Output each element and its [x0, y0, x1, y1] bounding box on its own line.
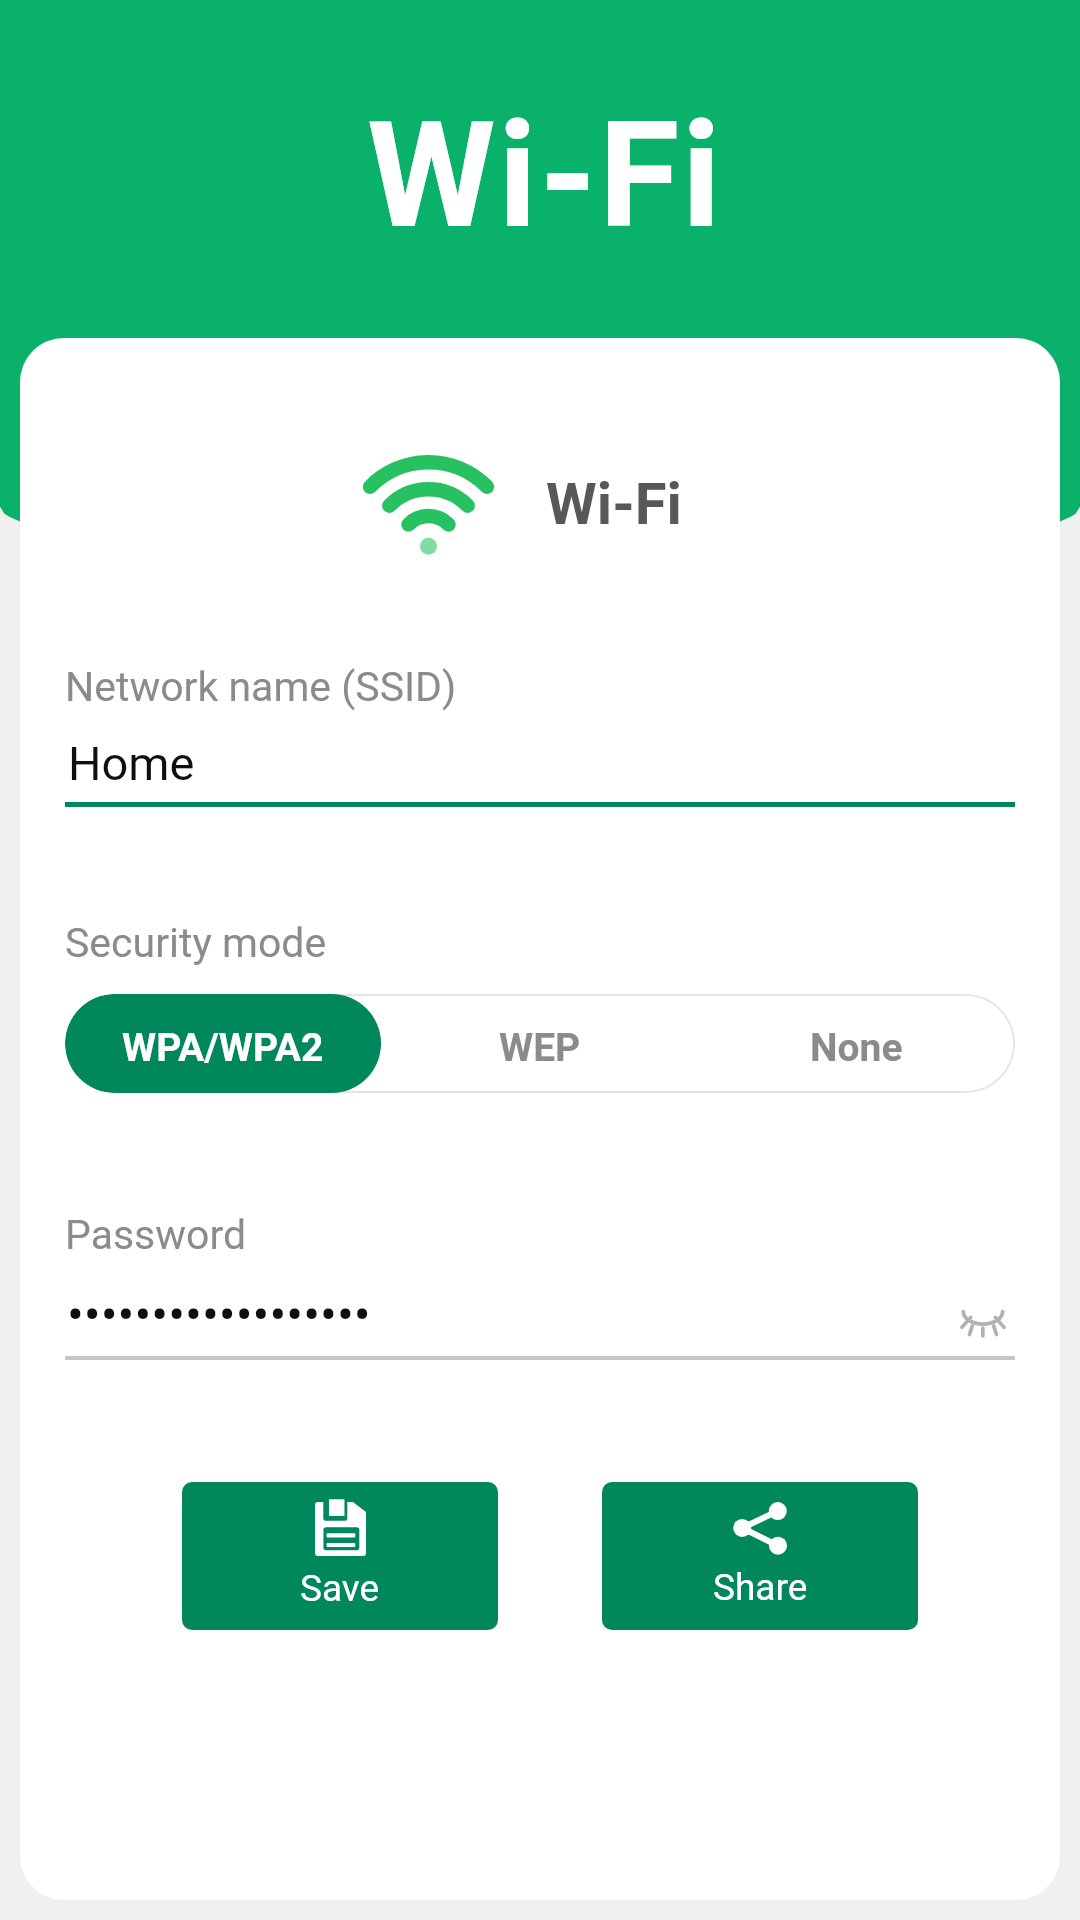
staticText: Security mode	[65, 919, 327, 967]
staticText: Wi-Fi	[546, 470, 682, 538]
staticText: Save	[300, 1567, 380, 1610]
button[interactable]: Show password	[951, 1291, 1015, 1355]
button[interactable]: ••••••••••••••••••	[65, 1286, 1015, 1356]
staticText: WEP	[499, 1025, 581, 1071]
staticText: Share	[713, 1566, 808, 1609]
button[interactable]: WPA/WPA2	[65, 994, 381, 1093]
button[interactable]: Share	[602, 1482, 918, 1630]
staticText: Network name (SSID)	[65, 663, 457, 711]
staticText: Password	[65, 1211, 247, 1259]
button[interactable]: Save	[182, 1482, 498, 1630]
button[interactable]: None	[698, 994, 1015, 1093]
staticText: Wi-Fi	[367, 90, 724, 262]
staticText: None	[810, 1025, 903, 1071]
staticText: WPA/WPA2	[122, 1025, 324, 1071]
staticText: Home	[68, 736, 195, 791]
button[interactable]: Home	[65, 736, 1015, 807]
button[interactable]: WEP	[381, 994, 698, 1093]
staticText: ••••••••••••••••••	[67, 1286, 371, 1345]
